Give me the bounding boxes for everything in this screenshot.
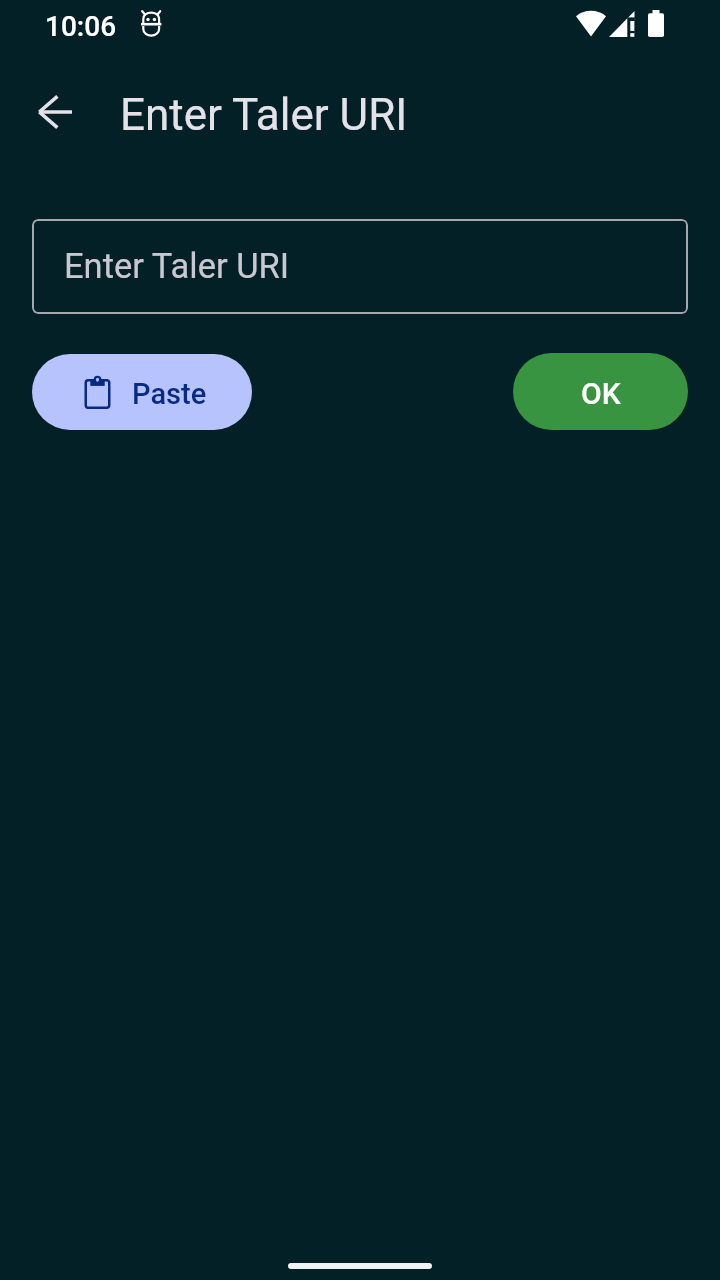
button[interactable]: Back bbox=[20, 76, 92, 148]
staticText: Paste bbox=[132, 377, 207, 411]
staticText: Enter Taler URI bbox=[120, 89, 408, 141]
staticText: Enter Taler URI bbox=[64, 246, 290, 286]
button[interactable]: Enter Taler URI bbox=[32, 219, 688, 314]
staticText: 10:06 bbox=[45, 10, 117, 43]
button[interactable]: OK bbox=[513, 353, 688, 430]
staticText: OK bbox=[581, 376, 621, 411]
button[interactable]: Paste bbox=[32, 354, 252, 430]
